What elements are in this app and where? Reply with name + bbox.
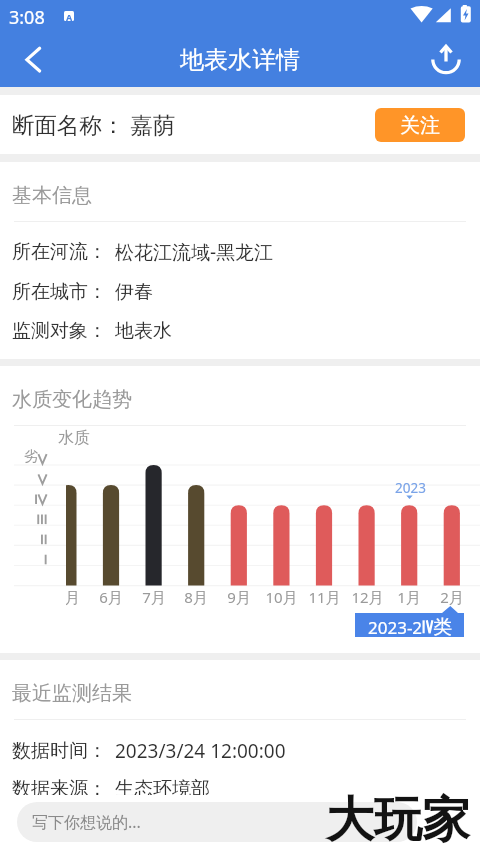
button[interactable]: Back (9, 35, 57, 83)
staticText: 5月 (66, 587, 80, 606)
staticText: 2023 (395, 479, 426, 497)
staticText: 2023-2 (368, 616, 423, 639)
staticText: 3:08 (9, 5, 45, 30)
staticText: 数据来源： (12, 777, 107, 801)
staticText: 监测对象： (12, 319, 107, 343)
button[interactable]: 数据来源： (12, 769, 480, 808)
staticText: 生态环境部 (115, 777, 210, 801)
button[interactable]: 所在城市： (12, 272, 480, 311)
staticText: 8月 (184, 587, 208, 606)
staticText: 11月 (308, 587, 341, 606)
button[interactable]: 监测对象： (12, 311, 480, 350)
staticText: 类 (433, 615, 452, 639)
button[interactable]: Share (423, 36, 471, 84)
staticText: 伊春 (115, 280, 153, 304)
staticText: 7月 (142, 587, 166, 606)
staticText: 12月 (351, 587, 384, 606)
button[interactable]: 关注 (375, 108, 465, 142)
staticText: 2023/3/24 12:00:00 (115, 738, 286, 764)
staticText: 基本信息 (12, 183, 92, 208)
staticText: 2月 (440, 587, 464, 606)
staticText: 松花江流域-黑龙江 (115, 239, 274, 265)
staticText: 地表水 (115, 319, 172, 343)
staticText: 水质 (58, 428, 90, 448)
button[interactable]: 数据时间： (12, 731, 480, 770)
staticText: 水质变化趋势 (12, 387, 132, 412)
staticText: A (66, 11, 73, 21)
staticText: 大玩家 (326, 790, 470, 850)
staticText: 10月 (265, 587, 298, 606)
staticText: 写下你想说的... (32, 811, 141, 833)
staticText: 6月 (99, 587, 123, 606)
button[interactable]: 写下你想说的... (17, 802, 417, 842)
button[interactable]: 2023-2 (355, 606, 464, 637)
staticText: 劣 (24, 448, 38, 466)
staticText: 所在城市： (12, 280, 107, 304)
staticText: 1月 (397, 587, 421, 606)
staticText: 关注 (400, 113, 440, 138)
staticText: 断面名称： 嘉荫 (12, 109, 176, 140)
staticText: 地表水详情 (180, 45, 300, 75)
staticText: 最近监测结果 (12, 681, 132, 706)
staticText: 所在河流： (12, 240, 107, 264)
button[interactable]: 所在河流： (12, 232, 480, 271)
staticText: 9月 (227, 587, 251, 606)
staticText: 数据时间： (12, 739, 107, 763)
